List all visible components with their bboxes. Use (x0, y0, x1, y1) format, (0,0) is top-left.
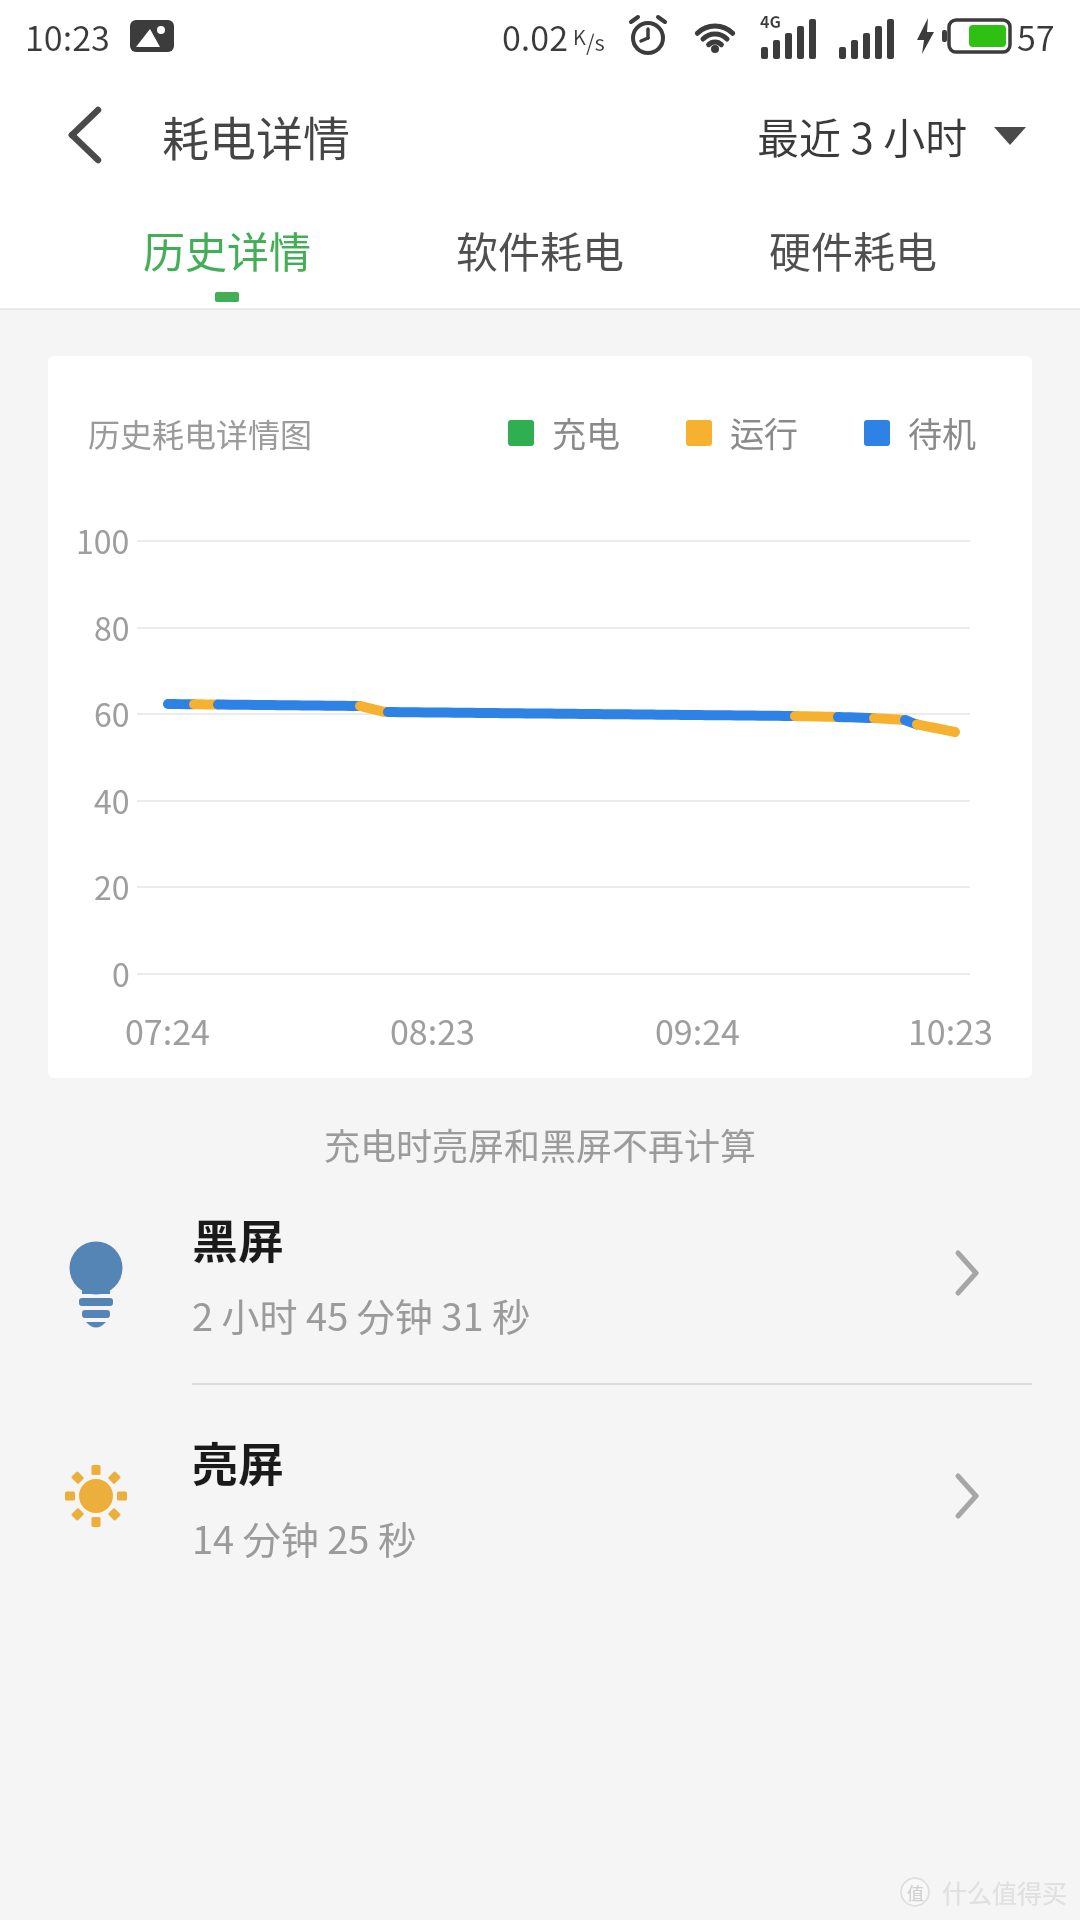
staticText: /s (586, 25, 605, 57)
staticText: 09:24 (655, 1006, 740, 1055)
staticText: 黑屏 (192, 1205, 284, 1272)
staticText: 运行 (730, 408, 798, 457)
staticText: 历史详情 (143, 219, 312, 280)
staticText: 20 (94, 863, 130, 909)
button[interactable]: 硬件耗电 (697, 198, 1010, 308)
staticText: 4G (760, 9, 781, 32)
staticText: 100 (76, 517, 130, 563)
button[interactable]: 黑屏 (0, 1188, 1080, 1358)
staticText: 什么值得买 (942, 1874, 1068, 1910)
staticText: 硬件耗电 (769, 219, 938, 280)
staticText: 耗电详情 (162, 101, 350, 169)
staticText: 软件耗电 (456, 219, 625, 280)
staticText: 充电 (552, 408, 620, 457)
button[interactable]: 最近 3 小时 (757, 105, 1028, 166)
staticText: 14 分钟 25 秒 (192, 1510, 416, 1565)
button[interactable] (66, 108, 104, 162)
staticText: 57 (1017, 12, 1055, 61)
staticText: 40 (94, 777, 130, 823)
button[interactable]: 历史详情 (70, 198, 384, 308)
staticText: 07:24 (125, 1006, 210, 1055)
staticText: 待机 (908, 408, 976, 457)
button[interactable]: 软件耗电 (384, 198, 697, 308)
staticText: 0 (112, 950, 130, 996)
staticText: 值 (907, 1880, 924, 1905)
staticText: 0.02 (502, 12, 569, 61)
staticText: 08:23 (390, 1006, 475, 1055)
staticText: K (573, 22, 586, 51)
staticText: 80 (94, 604, 130, 650)
staticText: 亮屏 (192, 1428, 284, 1495)
staticText: 60 (94, 690, 130, 736)
staticText: 充电时亮屏和黑屏不再计算 (324, 1118, 757, 1170)
staticText: 10:23 (908, 1006, 993, 1055)
staticText: 10:23 (25, 12, 110, 61)
staticText: 2 小时 45 分钟 31 秒 (192, 1287, 531, 1342)
staticText: 历史耗电详情图 (88, 410, 313, 456)
button[interactable]: 亮屏 (0, 1411, 1080, 1581)
staticText: 最近 3 小时 (757, 105, 968, 166)
